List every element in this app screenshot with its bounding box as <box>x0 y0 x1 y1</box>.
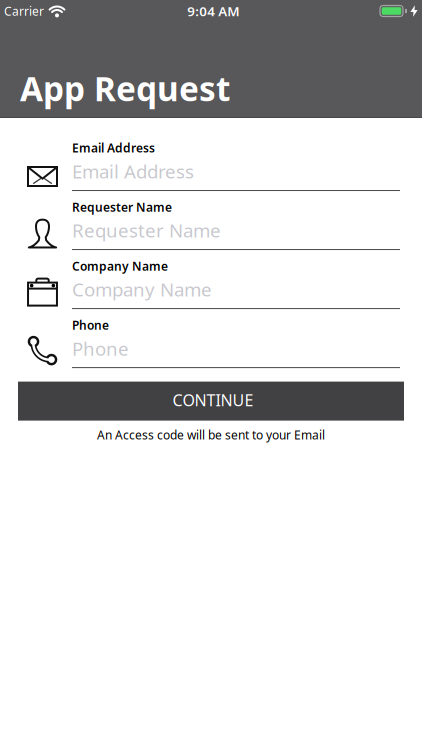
staticText: App Request <box>20 66 230 110</box>
staticText: Email Address <box>72 159 194 184</box>
button[interactable]: Email Address <box>0 140 422 191</box>
staticText: Email Address <box>72 140 155 156</box>
staticText: 9:04 AM <box>187 2 239 20</box>
button[interactable]: Company Name <box>0 258 422 309</box>
staticText: Requester Name <box>72 218 221 243</box>
button[interactable]: Requester Name <box>0 199 422 250</box>
staticText: Company Name <box>72 258 168 274</box>
button[interactable]: Phone <box>0 317 422 368</box>
staticText: An Access code will be sent to your Emai… <box>97 427 325 443</box>
staticText: Company Name <box>72 277 212 302</box>
button[interactable]: CONTINUE <box>0 382 422 421</box>
staticText: Phone <box>72 336 129 361</box>
staticText: Phone <box>72 317 109 333</box>
staticText: Carrier <box>4 3 44 19</box>
staticText: Requester Name <box>72 199 172 215</box>
staticText: CONTINUE <box>172 389 253 411</box>
